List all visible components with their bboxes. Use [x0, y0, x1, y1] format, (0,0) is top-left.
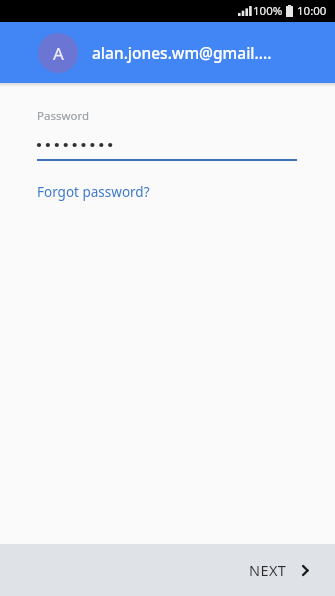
staticText: alan.jones.wm@gmail....: [92, 42, 272, 63]
button[interactable]: [0, 136, 335, 153]
other: Next: [300, 563, 311, 578]
staticText: NEXT: [249, 560, 287, 580]
staticText: 10:00: [297, 3, 327, 19]
staticText: A: [53, 42, 64, 65]
button[interactable]: A: [0, 22, 335, 83]
button[interactable]: Forgot password?: [37, 183, 150, 201]
staticText: Password: [37, 108, 90, 124]
staticText: Forgot password?: [37, 183, 150, 201]
button[interactable]: NEXT: [227, 544, 335, 596]
staticText: 100%: [253, 3, 283, 19]
